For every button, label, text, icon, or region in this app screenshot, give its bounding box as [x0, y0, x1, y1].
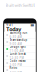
button[interactable]: Design sync: [4, 46, 36, 53]
staticText: Team standup: [10, 38, 28, 42]
staticText: Retro: [10, 66, 18, 70]
button[interactable]: Team standup: [4, 39, 36, 46]
staticText: 12:30 PM: [10, 56, 24, 60]
button[interactable]: Morning run: [4, 32, 36, 39]
staticText: Today: [6, 26, 21, 33]
staticText: Morning run: [10, 31, 28, 35]
staticText: 6:30 AM: [10, 35, 22, 39]
button[interactable]: Code review: [4, 60, 36, 67]
button[interactable]: Retro: [4, 67, 36, 72]
button[interactable]: Lunch break: [4, 53, 36, 60]
staticText: 11:00 AM: [10, 49, 24, 53]
staticText: 2:00 PM: [10, 63, 22, 67]
staticText: Lunch break: [10, 52, 26, 56]
staticText: Design sync: [10, 45, 26, 49]
staticText: Code review: [10, 59, 26, 63]
staticText: Built with SwiftUI: [5, 3, 34, 8]
staticText: 9:41: [6, 23, 13, 27]
staticText: 4:00 PM: [10, 70, 22, 72]
staticText: 9:00 AM: [10, 42, 22, 46]
staticText: ▮▮▮: [31, 24, 34, 27]
